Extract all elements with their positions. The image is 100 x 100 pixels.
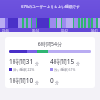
staticText: 深い睡眠 22%	[13, 67, 35, 72]
other: Sleep stage breakdown	[9, 50, 91, 53]
button[interactable]: 1時間31	[9, 57, 50, 72]
button[interactable]: 1時間10	[9, 76, 50, 85]
button[interactable]: 4時間15	[50, 57, 91, 72]
staticText: 分	[35, 80, 39, 85]
staticText: 1時間10	[9, 76, 34, 85]
staticText: 分	[76, 61, 80, 66]
staticText: 23:56	[2, 29, 9, 32]
staticText: 67%のユーザーよりもよい睡眠です	[21, 4, 80, 9]
button[interactable]: 0	[50, 76, 91, 85]
button[interactable]: 6時間54分	[5, 37, 95, 88]
staticText: 0	[50, 76, 54, 85]
staticText: 浅い睡眠 61%	[54, 67, 76, 72]
staticText: 04:51	[91, 29, 98, 32]
staticText: 分	[55, 80, 59, 85]
staticText: 1時間31	[9, 57, 34, 66]
staticText: 分	[35, 61, 39, 66]
staticText: 00:14	[32, 29, 39, 32]
staticText: 6時間54分	[9, 40, 91, 47]
staticText: 02:32	[61, 29, 68, 32]
staticText: 4時間15	[50, 57, 75, 66]
